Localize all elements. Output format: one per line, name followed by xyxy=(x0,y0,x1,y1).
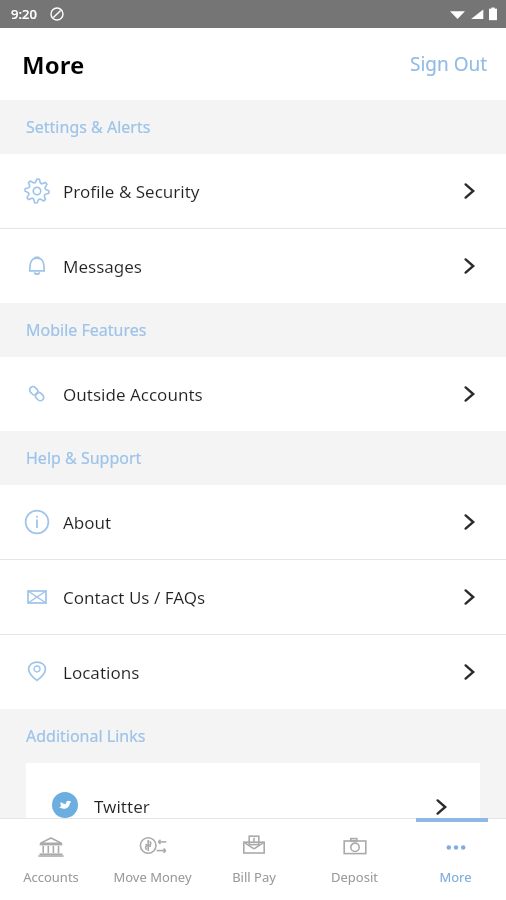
staticText: Sign Out xyxy=(410,51,488,77)
button[interactable]: Sign Out xyxy=(392,41,506,87)
staticText: Move Money xyxy=(113,868,192,886)
staticText: Profile & Security xyxy=(63,180,200,203)
button[interactable]: Outside Accounts xyxy=(0,357,506,431)
staticText: More xyxy=(439,868,472,886)
button[interactable]: Messages xyxy=(0,229,506,303)
button[interactable]: About xyxy=(0,485,506,559)
button[interactable]: Bill Pay xyxy=(203,818,304,900)
staticText: Contact Us / FAQs xyxy=(63,586,206,609)
staticText: Locations xyxy=(63,661,140,684)
staticText: Messages xyxy=(63,255,143,278)
staticText: About xyxy=(63,511,112,534)
staticText: Accounts xyxy=(23,868,79,886)
button[interactable]: Contact Us / FAQs xyxy=(0,560,506,634)
staticText: Bill Pay xyxy=(232,868,276,886)
staticText: Outside Accounts xyxy=(63,383,203,406)
staticText: Twitter xyxy=(94,795,150,818)
button[interactable]: Twitter xyxy=(26,763,480,818)
staticText: Mobile Features xyxy=(26,319,147,341)
staticText: Additional Links xyxy=(26,725,146,747)
button[interactable]: Profile & Security xyxy=(0,154,506,228)
button[interactable]: Locations xyxy=(0,635,506,709)
staticText: More xyxy=(22,48,85,81)
staticText: Help & Support xyxy=(26,447,142,469)
button[interactable]: Accounts xyxy=(0,818,102,900)
staticText: 9:20 xyxy=(11,5,37,23)
staticText: Deposit xyxy=(331,868,378,886)
staticText: Settings & Alerts xyxy=(26,116,151,138)
button[interactable]: More xyxy=(405,818,506,900)
button[interactable]: Deposit xyxy=(304,818,405,900)
button[interactable]: Move Money xyxy=(102,818,203,900)
